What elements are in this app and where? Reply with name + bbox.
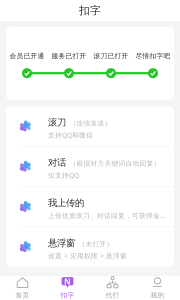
staticText: 会员已开通 xyxy=(9,52,44,60)
staticText: 扣字 xyxy=(60,291,74,299)
staticText: 设置 > 应用权限 > 悬浮窗 xyxy=(48,251,127,260)
staticText: 首页 xyxy=(15,291,29,299)
staticText: 服务已打开 xyxy=(51,52,86,60)
staticText: （根据对方关键词自动回复） xyxy=(69,159,160,168)
button[interactable]: 代打 xyxy=(90,275,135,300)
button[interactable]: 我上传的 xyxy=(6,187,174,226)
button[interactable]: 首页 xyxy=(0,275,45,300)
staticText: N xyxy=(64,276,71,287)
button[interactable]: 滚刀 xyxy=(6,106,174,146)
button[interactable]: 对话 xyxy=(6,146,174,186)
staticText: （连续发送） xyxy=(69,119,111,127)
staticText: 滚刀已打开 xyxy=(93,52,128,60)
staticText: 我的 xyxy=(150,291,164,299)
button[interactable]: 我的 xyxy=(135,275,180,300)
staticText: 滚刀 xyxy=(48,117,66,128)
staticText: 对话 xyxy=(48,157,66,168)
button[interactable]: N xyxy=(45,275,90,300)
staticText: 代打 xyxy=(105,291,119,299)
staticText: 上传优质滚刀、对话回复，可获得金币奖励哦 xyxy=(48,211,170,220)
staticText: 支持QQ和微信 xyxy=(48,131,93,139)
staticText: 扣字 xyxy=(79,4,101,17)
staticText: 我上传的 xyxy=(48,197,84,209)
staticText: （未打开） xyxy=(78,240,113,248)
button[interactable]: 悬浮窗 xyxy=(6,227,174,267)
staticText: 悬浮窗 xyxy=(48,237,75,249)
staticText: 仅支持QQ xyxy=(48,171,79,180)
staticText: 尽情扣字吧 xyxy=(135,52,170,60)
